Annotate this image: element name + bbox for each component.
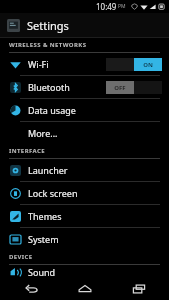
staticText: Data usage [28, 104, 162, 116]
staticText: Bluetooth [28, 81, 106, 93]
staticText: Wi-Fi [28, 58, 106, 70]
other: Settings app icon [7, 19, 20, 32]
button[interactable]: Wi-Fi on [106, 57, 162, 71]
staticText: DEVICE [9, 253, 33, 261]
staticText: More... [28, 127, 162, 139]
staticText: Launcher [28, 164, 162, 176]
staticText: Lock screen [28, 187, 162, 199]
button[interactable]: More... [0, 122, 169, 144]
staticText: Settings [27, 18, 69, 33]
staticText: 10:49 [96, 1, 117, 12]
staticText: WIRELESS & NETWORKS [9, 41, 87, 49]
button[interactable]: Wi-Fi [0, 53, 169, 75]
staticText: Sound [28, 266, 162, 278]
button[interactable]: Launcher [0, 159, 169, 181]
staticText: ON [143, 61, 153, 69]
staticText: PM [118, 3, 126, 10]
button[interactable]: Data usage [0, 99, 169, 121]
staticText: OFF [114, 84, 126, 92]
staticText: INTERFACE [9, 147, 45, 155]
button[interactable]: Home [62, 278, 107, 300]
button[interactable]: Themes [0, 205, 169, 227]
button[interactable]: Bluetooth [0, 76, 169, 98]
button[interactable]: Sound [0, 265, 169, 278]
button[interactable]: Settings app icon [0, 13, 169, 37]
button[interactable]: Lock screen [0, 182, 169, 204]
button[interactable]: Recent apps [116, 278, 161, 300]
button[interactable]: Back [9, 278, 54, 300]
staticText: Themes [28, 210, 162, 222]
button[interactable]: Bluetooth off [106, 80, 162, 94]
staticText: System [28, 233, 162, 245]
button[interactable]: System [0, 228, 169, 250]
